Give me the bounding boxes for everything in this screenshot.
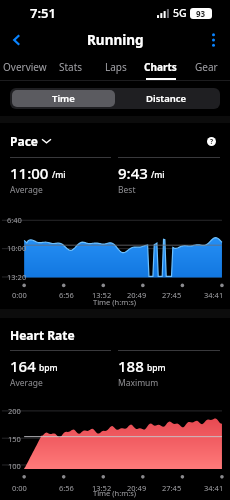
button[interactable]: Laps: [93, 54, 138, 80]
staticText: Average: [10, 184, 43, 196]
staticText: Heart Rate: [10, 327, 75, 343]
button[interactable]: Charts: [138, 54, 183, 80]
staticText: Stats: [59, 60, 83, 74]
staticText: 34:41: [204, 483, 224, 493]
staticText: 0:00: [12, 290, 27, 300]
button[interactable]: Time: [12, 90, 115, 107]
staticText: 6:40: [7, 215, 22, 225]
staticText: 150: [8, 434, 21, 444]
staticText: 7:51: [30, 4, 56, 22]
staticText: 27:45: [162, 483, 182, 493]
staticText: Average: [10, 377, 43, 389]
staticText: 5G: [173, 6, 187, 20]
button[interactable]: Distance: [115, 90, 218, 107]
staticText: Overview: [3, 60, 47, 74]
staticText: Gear: [195, 60, 218, 74]
staticText: /mi: [151, 169, 165, 181]
staticText: Best: [118, 184, 136, 196]
staticText: 9:43: [118, 163, 148, 183]
button[interactable]: Pace: [10, 133, 51, 149]
button[interactable]: Gear: [183, 54, 228, 80]
button[interactable]: Stats: [48, 54, 93, 80]
staticText: ?: [210, 137, 214, 146]
button[interactable]: Overview: [2, 54, 48, 80]
staticText: 164: [10, 356, 36, 376]
staticText: Maximum: [118, 377, 159, 389]
staticText: Distance: [146, 92, 187, 105]
staticText: bpm: [147, 362, 166, 374]
staticText: Running: [87, 31, 144, 49]
staticText: Time (h:m:s): [93, 488, 137, 498]
staticText: 27:45: [162, 290, 182, 300]
staticText: 200: [8, 406, 21, 416]
staticText: 6:56: [59, 483, 74, 493]
staticText: 93: [196, 8, 206, 19]
staticText: 13:20: [7, 272, 27, 282]
staticText: 10:00: [7, 243, 27, 253]
button[interactable]: Info: [202, 132, 220, 150]
staticText: 13:52: [92, 290, 112, 300]
staticText: 20:49: [127, 483, 147, 493]
staticText: 34:41: [204, 290, 224, 300]
staticText: 13:52: [92, 483, 112, 493]
staticText: 20:49: [127, 290, 147, 300]
button[interactable]: Back: [0, 26, 34, 54]
staticText: Pace: [10, 133, 38, 149]
button[interactable]: More options: [196, 26, 230, 54]
staticText: Laps: [105, 60, 127, 74]
staticText: bpm: [39, 362, 58, 374]
staticText: Time (h:m:s): [93, 297, 137, 307]
staticText: 0:00: [12, 483, 27, 493]
staticText: 11:00: [10, 163, 49, 183]
button[interactable]: Heart Rate: [10, 327, 75, 343]
staticText: 100: [8, 461, 21, 471]
staticText: 188: [118, 356, 144, 376]
staticText: Charts: [144, 60, 177, 74]
staticText: Time: [52, 92, 75, 105]
staticText: /mi: [52, 169, 66, 181]
staticText: 6:56: [59, 290, 74, 300]
